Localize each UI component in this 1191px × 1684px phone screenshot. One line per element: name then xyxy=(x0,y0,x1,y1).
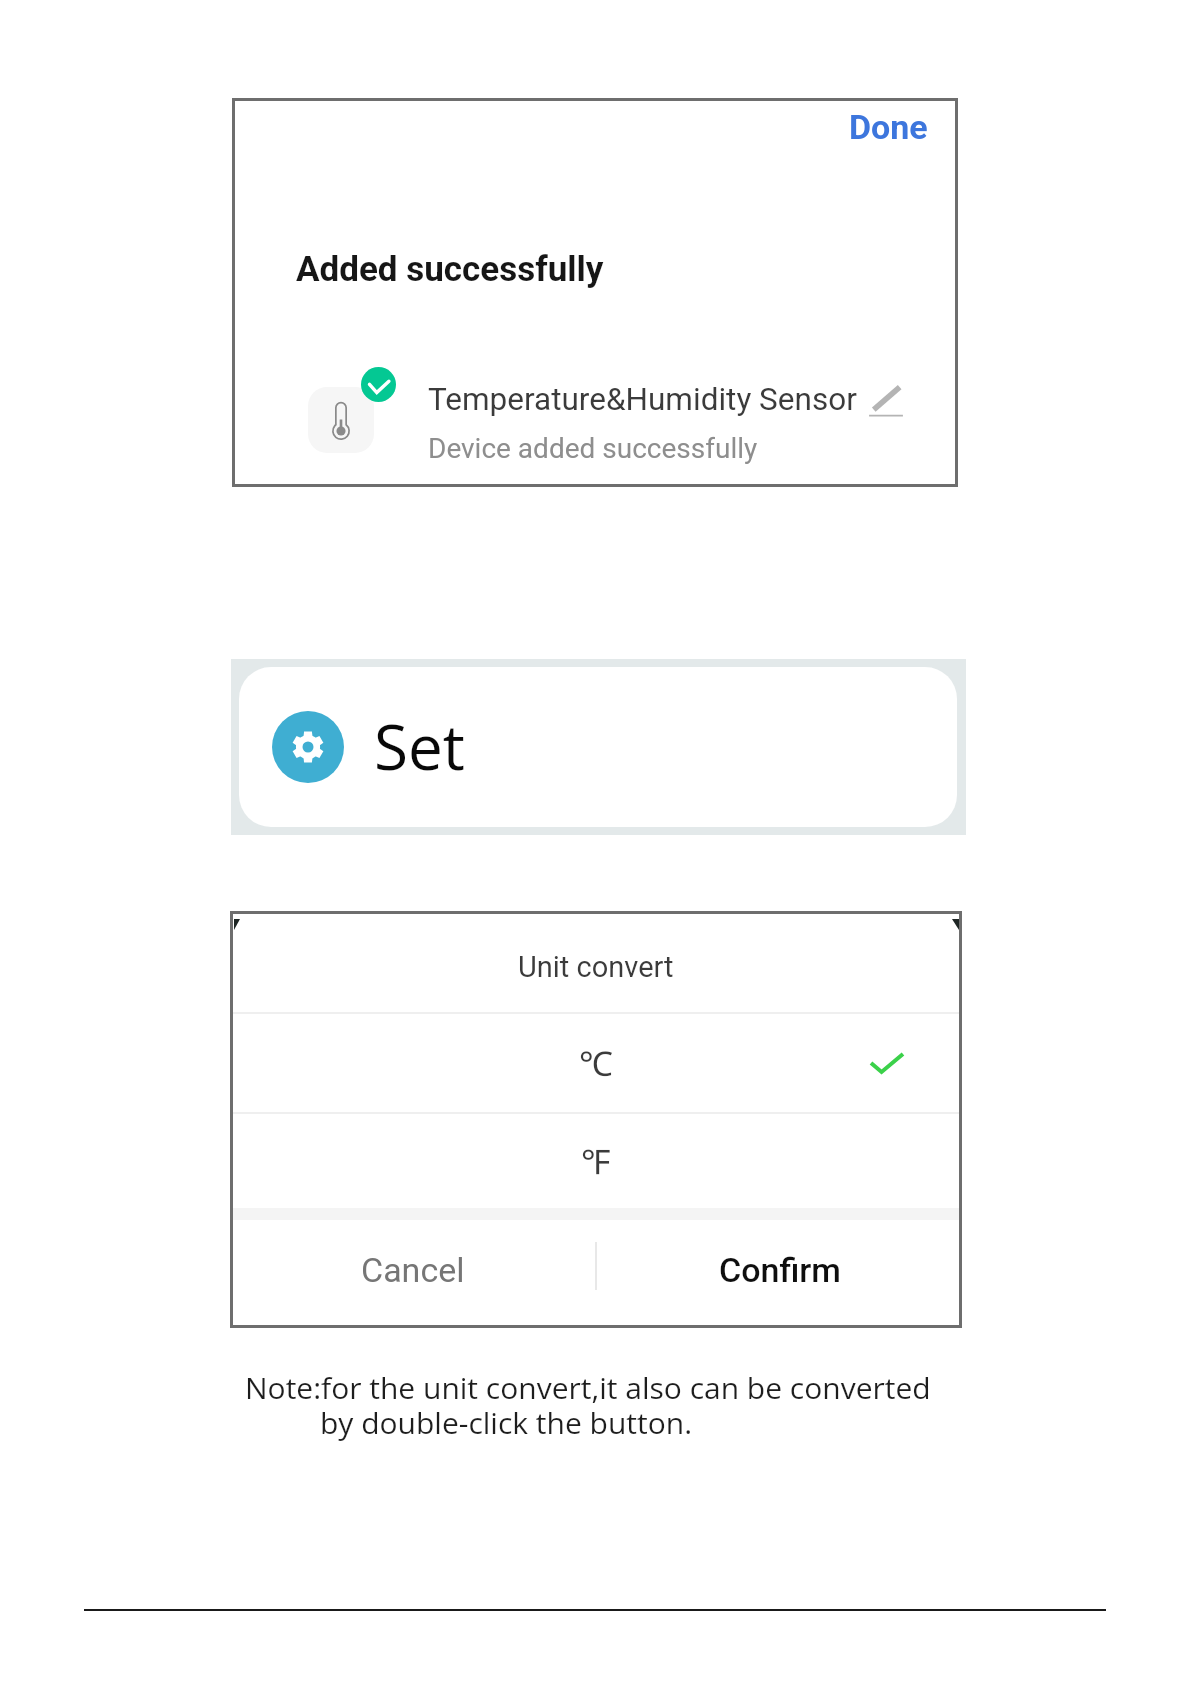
button[interactable]: Set xyxy=(239,667,957,827)
staticText: by double-click the button. xyxy=(320,1402,693,1443)
staticText: ℃ xyxy=(579,1040,613,1086)
button[interactable]: Cancel xyxy=(230,1220,595,1320)
staticText: ℉ xyxy=(581,1138,611,1184)
button[interactable]: Confirm xyxy=(597,1220,962,1320)
button[interactable]: Rename device xyxy=(868,383,904,417)
staticText: Set xyxy=(374,704,465,788)
staticText: Added successfully xyxy=(296,249,604,290)
staticText: Unit convert xyxy=(518,950,674,984)
button[interactable]: ℃ xyxy=(230,1014,962,1112)
staticText: Note:for the unit convert,it also can be… xyxy=(245,1367,931,1408)
staticText: Temperature&Humidity Sensor xyxy=(428,381,857,418)
staticText: Confirm xyxy=(719,1250,841,1290)
button[interactable]: ℉ xyxy=(230,1114,962,1208)
staticText: Device added successfully xyxy=(428,432,758,465)
staticText: Cancel xyxy=(361,1250,465,1290)
button[interactable]: Done xyxy=(829,97,948,157)
